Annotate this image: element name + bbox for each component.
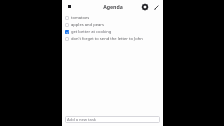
- staticText: Agenda: [103, 3, 123, 10]
- staticText: tomatoes: [71, 15, 90, 21]
- button[interactable]: Add a new task: [65, 116, 160, 123]
- button[interactable]: don't forget to send the letter to John: [62, 35, 163, 42]
- button[interactable]: Edit: [151, 2, 161, 12]
- staticText: Add a new task: [67, 117, 97, 123]
- button[interactable]: Settings: [140, 2, 150, 12]
- button[interactable]: Menu: [65, 2, 74, 11]
- button[interactable]: get better at cooking: [62, 28, 163, 35]
- button[interactable]: tomatoes: [62, 14, 163, 21]
- staticText: apples and pears: [71, 22, 104, 28]
- staticText: don't forget to send the letter to John: [71, 36, 143, 42]
- button[interactable]: apples and pears: [62, 21, 163, 28]
- staticText: get better at cooking: [71, 29, 112, 35]
